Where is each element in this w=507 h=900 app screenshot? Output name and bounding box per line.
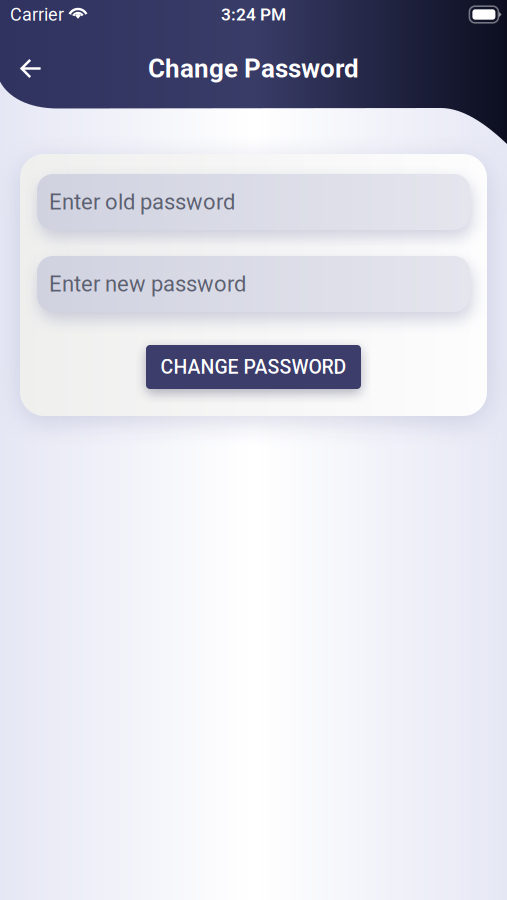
button[interactable]: Back xyxy=(8,45,54,91)
staticText: Enter new password xyxy=(49,271,246,297)
staticText: Enter old password xyxy=(49,189,235,215)
button[interactable]: Enter old password xyxy=(37,174,470,230)
button[interactable]: Enter new password xyxy=(37,256,470,312)
staticText: 3:24 PM xyxy=(221,4,286,25)
staticText: CHANGE PASSWORD xyxy=(160,356,346,378)
button[interactable]: CHANGE PASSWORD xyxy=(146,345,361,389)
staticText: Carrier xyxy=(10,4,64,25)
staticText: Change Password xyxy=(148,53,359,84)
